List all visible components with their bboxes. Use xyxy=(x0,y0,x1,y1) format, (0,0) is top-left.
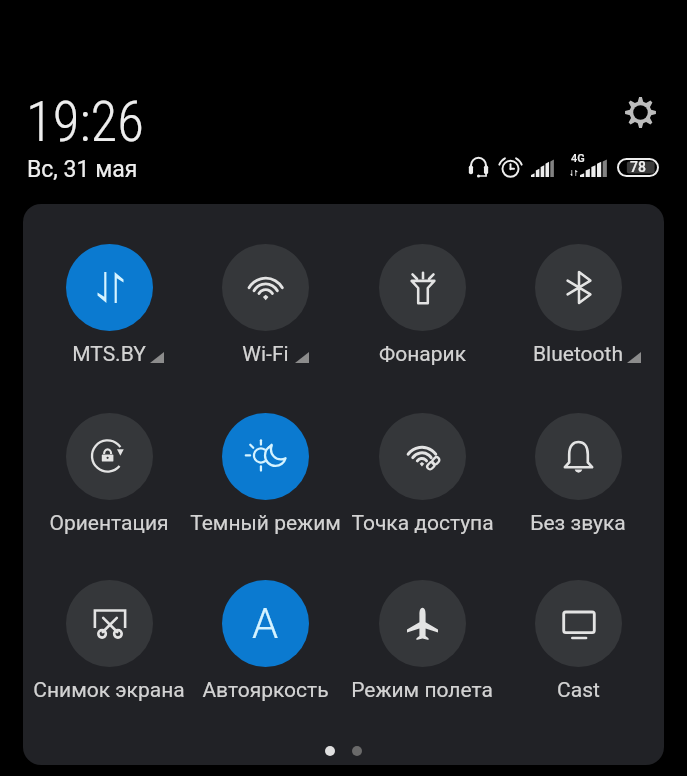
button[interactable]: Без звука xyxy=(500,413,656,536)
staticText: Фонарик xyxy=(379,342,466,367)
staticText: MTS.BY xyxy=(72,342,146,367)
staticText: 4G xyxy=(571,152,585,165)
staticText: Режим полета xyxy=(351,678,493,703)
button[interactable]: Ориентация xyxy=(31,413,187,536)
button[interactable]: Bluetooth xyxy=(500,244,656,367)
button[interactable]: Снимок экрана xyxy=(31,580,187,703)
staticText: Bluetooth xyxy=(533,342,623,367)
staticText: Точка доступа xyxy=(351,511,494,536)
button[interactable]: Settings xyxy=(620,92,660,132)
staticText: A xyxy=(252,599,279,648)
staticText: Темный режим xyxy=(190,511,341,536)
staticText: Без звука xyxy=(530,511,626,536)
button[interactable]: Фонарик xyxy=(344,244,500,367)
button[interactable]: Cast xyxy=(500,580,656,703)
staticText: 78 xyxy=(630,159,646,175)
button[interactable]: Точка доступа xyxy=(344,413,500,536)
button[interactable]: MTS.BY xyxy=(31,244,187,367)
staticText: Вс, 31 мая xyxy=(27,156,138,183)
button[interactable]: Темный режим xyxy=(187,413,343,536)
staticText: Ориентация xyxy=(49,511,169,536)
staticText: Cast xyxy=(557,678,600,703)
button[interactable]: Wi-Fi xyxy=(187,244,343,367)
staticText: 19:26 xyxy=(26,90,144,154)
staticText: Снимок экрана xyxy=(33,678,185,703)
button[interactable]: A xyxy=(187,580,343,703)
staticText: Wi-Fi xyxy=(242,342,289,367)
button[interactable]: Режим полета xyxy=(344,580,500,703)
staticText: Автояркость xyxy=(202,678,329,703)
